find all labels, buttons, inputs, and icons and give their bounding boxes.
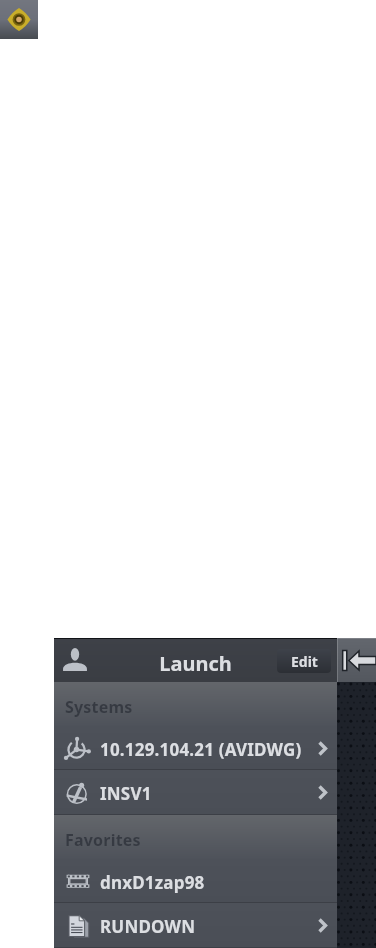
staticText: INSV1 — [100, 782, 152, 805]
staticText: Systems — [65, 696, 133, 718]
staticText: RUNDOWN — [100, 915, 196, 938]
button[interactable]: Edit — [277, 649, 331, 673]
staticText: dnxD1zap98 — [100, 871, 205, 894]
button[interactable]: Back — [337, 638, 376, 682]
button[interactable]: Account — [54, 638, 98, 682]
button[interactable]: 10.129.104.21 (AVIDWG) — [54, 726, 337, 770]
button[interactable]: INSV1 — [54, 770, 337, 815]
button[interactable]: RUNDOWN — [54, 903, 337, 948]
button[interactable]: App icon — [0, 0, 38, 39]
staticText: 10.129.104.21 (AVIDWG) — [100, 738, 302, 761]
staticText: Launch — [54, 650, 337, 677]
staticText: Edit — [291, 652, 318, 671]
button[interactable]: dnxD1zap98 — [54, 859, 337, 903]
staticText: Favorites — [65, 829, 141, 851]
